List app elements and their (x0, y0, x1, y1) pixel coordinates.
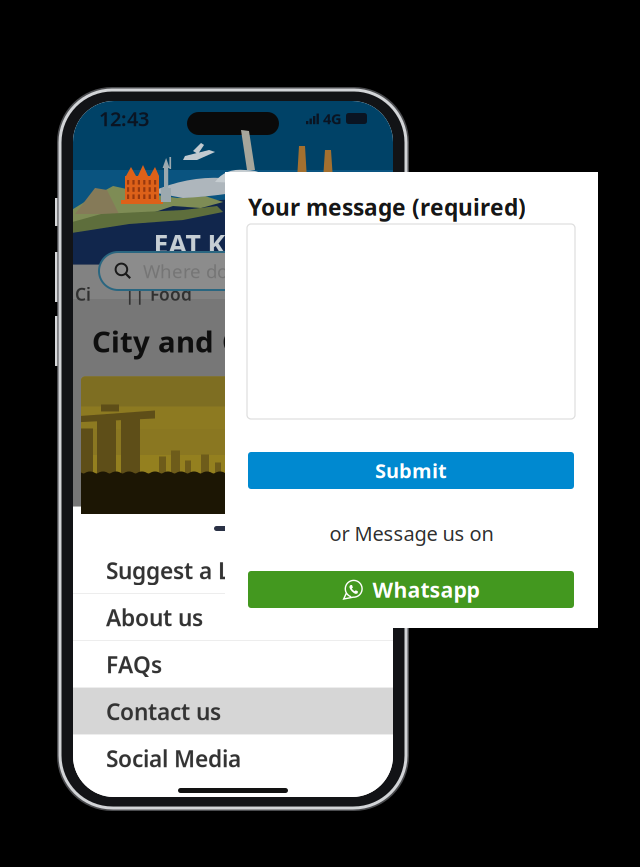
staticText: 12:43 (99, 105, 149, 132)
staticText: Submit (375, 457, 447, 484)
staticText: Your message (required) (248, 192, 526, 222)
button[interactable]: Whatsapp (248, 571, 574, 608)
staticText: || Food (125, 282, 192, 305)
staticText: FAQs (106, 649, 162, 679)
button[interactable]: Social Media (73, 735, 393, 782)
staticText: Social Media (106, 743, 241, 773)
staticText: Whatsapp (372, 575, 479, 604)
staticText: 4G (323, 109, 342, 128)
staticText: EAT KOSHER (153, 226, 312, 261)
staticText: Restau (232, 282, 290, 305)
staticText: About us (106, 602, 203, 632)
button[interactable]: Contact us (73, 688, 393, 735)
button[interactable]: Submit (248, 452, 574, 489)
staticText: Ci (75, 282, 91, 305)
button[interactable]: Suggest a Listing (73, 547, 393, 594)
button[interactable]: About us (73, 594, 393, 641)
staticText: City and Country (92, 321, 340, 360)
staticText: Where do you want to eat? (143, 259, 356, 283)
staticText: or Message us on (329, 520, 493, 547)
button[interactable]: FAQs (73, 641, 393, 688)
staticText: Suggest a Listing (106, 555, 290, 585)
staticText: Contact us (106, 696, 221, 726)
